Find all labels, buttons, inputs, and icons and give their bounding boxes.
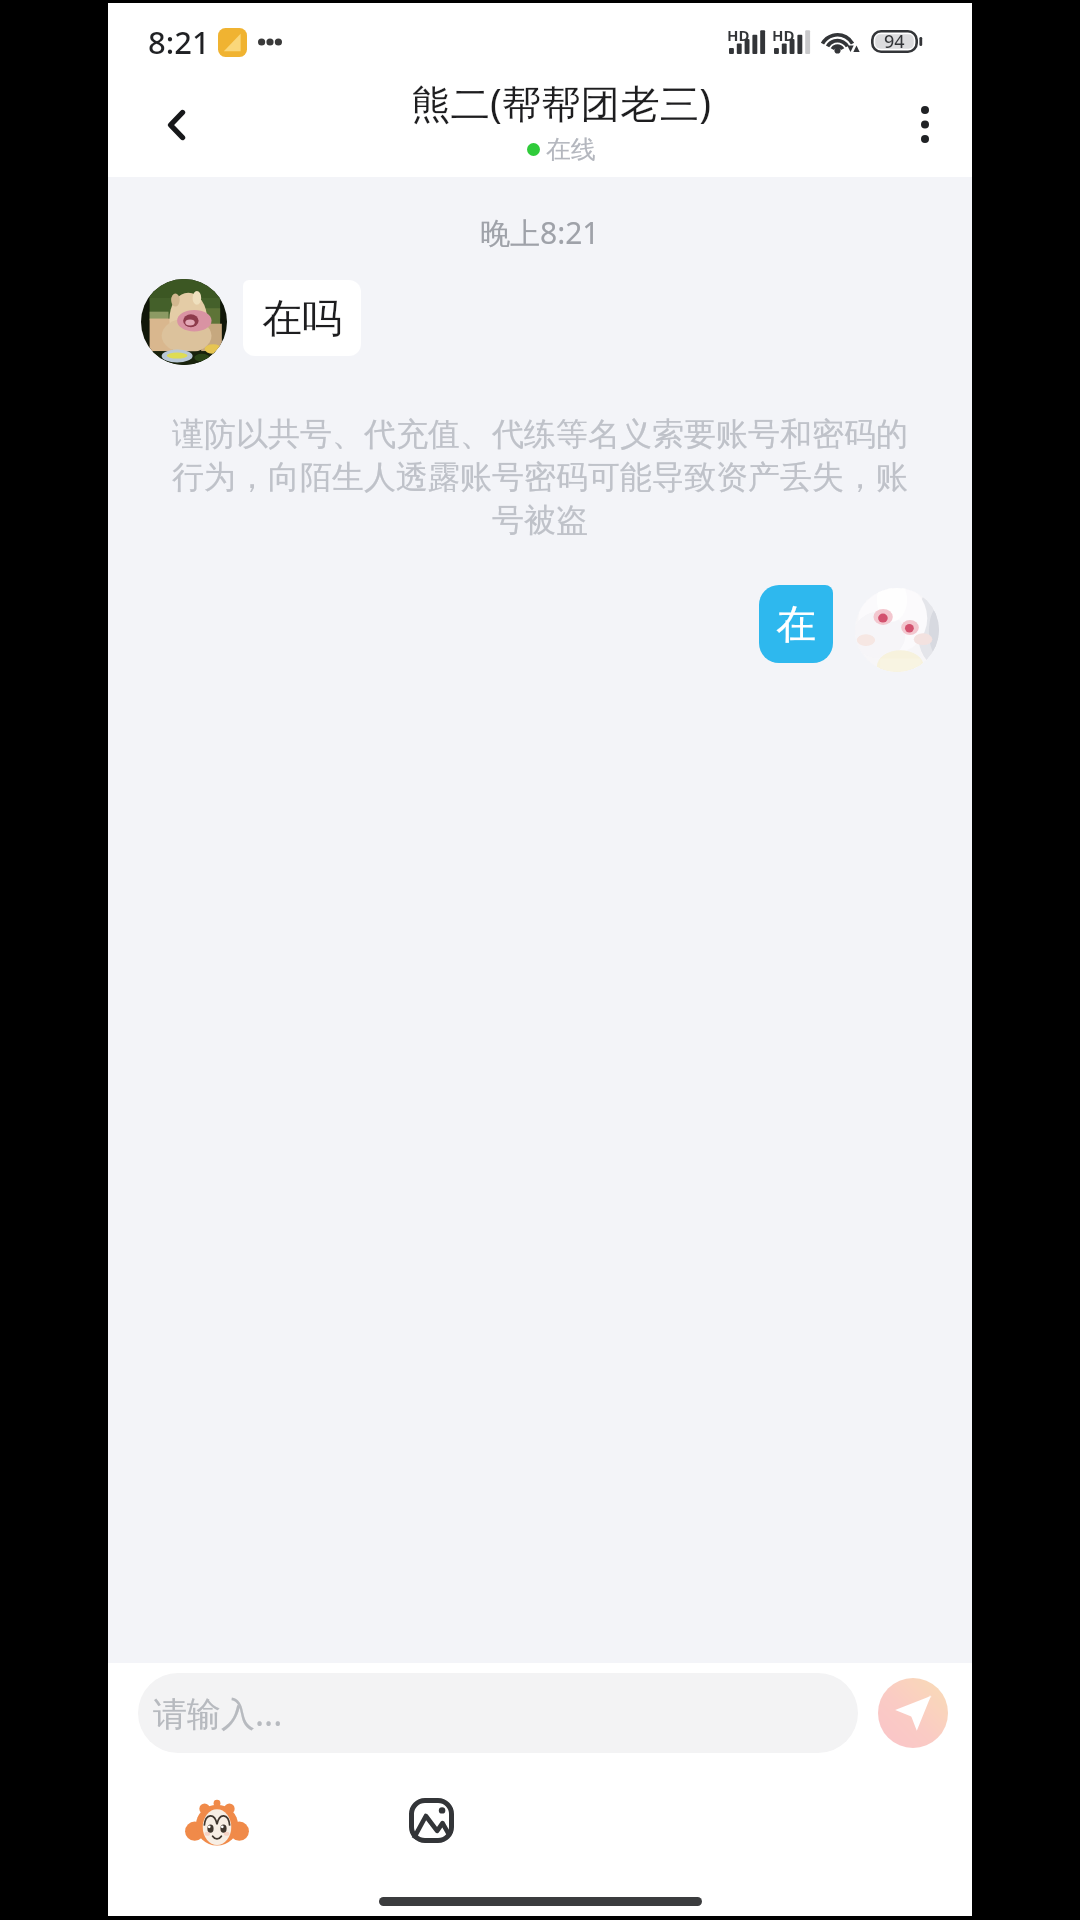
button[interactable]: Back <box>134 83 218 167</box>
staticText: 94 <box>884 29 905 54</box>
button[interactable]: 熊二(帮帮团老三) <box>405 74 718 167</box>
staticText: HD <box>727 25 750 45</box>
button[interactable]: More options <box>883 82 967 166</box>
staticText: 在线 <box>546 134 596 165</box>
button[interactable]: Pick image <box>409 1798 454 1843</box>
button[interactable]: 在吗 <box>243 280 361 356</box>
staticText: HD <box>772 25 795 45</box>
button[interactable]: Emoji <box>186 1790 248 1852</box>
button[interactable]: My avatar <box>855 588 939 672</box>
button[interactable]: Send <box>878 1678 948 1748</box>
staticText: 谨防以共号、代充值、代练等名义索要账号和密码的行为，向陌生人透露账号密码可能导致… <box>169 414 911 541</box>
button[interactable]: Contact avatar <box>141 279 227 365</box>
button[interactable]: 请输入... <box>138 1673 858 1753</box>
staticText: 请输入... <box>153 1690 283 1736</box>
staticText: 熊二(帮帮团老三) <box>411 76 712 130</box>
staticText: 在 <box>776 599 816 649</box>
button[interactable]: 在 <box>759 585 833 663</box>
staticText: 8:21 <box>148 21 210 63</box>
staticText: 晚上8:21 <box>480 212 600 253</box>
staticText: 在吗 <box>262 293 342 343</box>
